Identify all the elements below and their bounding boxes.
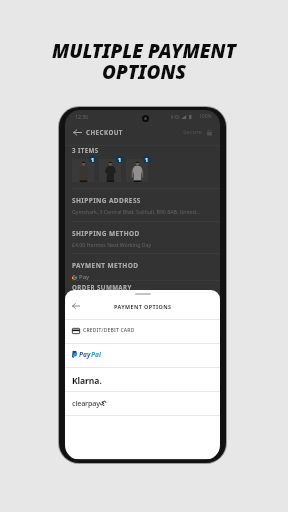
button[interactable]: PAYMENT METHOD (65, 256, 220, 285)
staticText: Klarna. (72, 375, 102, 387)
staticText: 1 (145, 156, 149, 163)
staticText: CREDIT/DEBIT CARD (83, 327, 135, 334)
button[interactable]: Back (69, 299, 82, 312)
staticText: 12:30 (75, 113, 89, 120)
staticText: SHIPPING METHOD (72, 229, 140, 238)
staticText: PAYMENT OPTIONS (114, 303, 172, 310)
staticText: OPTIONS (102, 59, 186, 85)
staticText: Pay (79, 273, 90, 281)
button[interactable]: Pay (65, 344, 220, 367)
button[interactable]: CREDIT/DEBIT CARD (65, 320, 220, 343)
staticText: 3 ITEMS (72, 146, 99, 154)
staticText: £4.00 Hermes Next Working Day (72, 241, 152, 248)
staticText: Gymshark, 3 Central Blvd, Solihull, B90 … (72, 208, 200, 215)
staticText: 1 (91, 156, 95, 163)
staticText: 1 (118, 156, 122, 163)
button[interactable]: SHIPPING METHOD (65, 224, 220, 253)
staticText: Secure (183, 128, 203, 136)
staticText: ORDER SUMMARY (72, 283, 132, 291)
staticText: PAYMENT METHOD (72, 261, 139, 270)
staticText: CHECKOUT (86, 128, 123, 136)
staticText: MULTIPLE PAYMENT (52, 38, 236, 64)
button[interactable]: clearpay (65, 392, 220, 415)
staticText: clearpay (72, 398, 100, 408)
staticText: 100% (199, 113, 212, 120)
staticText: Pal (91, 350, 101, 359)
button[interactable]: CHECKOUT (65, 124, 220, 140)
button[interactable]: Klarna. (65, 368, 220, 391)
button[interactable]: SHIPPING ADDRESS (65, 191, 220, 220)
staticText: SHIPPING ADDRESS (72, 196, 141, 205)
staticText: Pay (79, 350, 91, 359)
